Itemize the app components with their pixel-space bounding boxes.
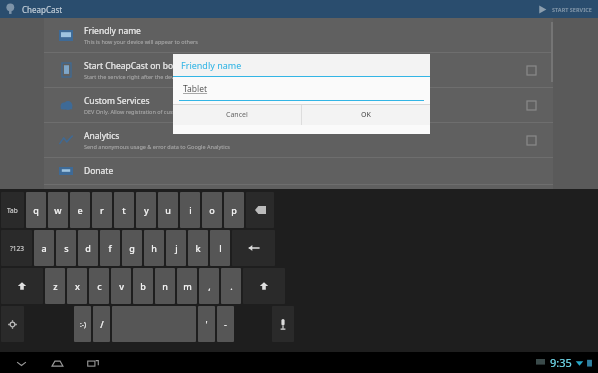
staticText: g — [129, 242, 135, 254]
button[interactable]: p — [224, 192, 244, 228]
staticText: Start the service right after the device… — [84, 73, 198, 80]
staticText: h — [151, 242, 157, 254]
staticText: r — [100, 204, 104, 216]
button[interactable]: Cancel — [173, 105, 301, 125]
button[interactable]: k — [188, 230, 208, 266]
button[interactable]: Shift — [243, 268, 285, 304]
button[interactable]: z — [45, 268, 65, 304]
button[interactable]: Start CheapCast on boot checkbox — [521, 60, 541, 80]
button[interactable]: q — [26, 192, 46, 228]
staticText: o — [209, 204, 215, 216]
button[interactable]: m — [177, 268, 197, 304]
button[interactable]: g — [122, 230, 142, 266]
staticText: z — [53, 280, 58, 292]
staticText: y — [144, 204, 149, 216]
button[interactable]: Hide keyboard — [8, 354, 34, 372]
staticText: u — [165, 204, 171, 216]
button[interactable]: . — [221, 268, 241, 304]
staticText: ' — [205, 318, 208, 330]
button[interactable]: Home — [44, 354, 70, 372]
staticText: p — [231, 204, 237, 216]
staticText: OK — [361, 110, 371, 120]
staticText: ?123 — [10, 244, 24, 253]
button[interactable]: l — [210, 230, 230, 266]
button[interactable]: t — [114, 192, 134, 228]
staticText: Analytics — [84, 130, 120, 142]
staticText: :-) — [80, 320, 86, 329]
button[interactable]: i — [180, 192, 200, 228]
staticText: 9:35 — [550, 355, 572, 370]
staticText: CheapCast — [22, 4, 63, 15]
staticText: w — [54, 204, 62, 216]
staticText: / — [100, 318, 104, 330]
button[interactable]: ' — [198, 306, 215, 342]
button[interactable]: x — [67, 268, 87, 304]
button[interactable]: / — [93, 306, 110, 342]
button[interactable]: Custom Services checkbox — [521, 95, 541, 115]
button[interactable]: d — [78, 230, 98, 266]
button[interactable]: o — [202, 192, 222, 228]
button[interactable]: Start CheapCast on boot — [44, 53, 553, 88]
staticText: c — [97, 280, 102, 292]
button[interactable]: c — [89, 268, 109, 304]
staticText: This is how your device will appear to o… — [84, 38, 199, 45]
button[interactable]: n — [155, 268, 175, 304]
button[interactable]: Shift — [1, 268, 43, 304]
staticText: e — [77, 204, 83, 216]
button[interactable]: u — [158, 192, 178, 228]
button[interactable]: r — [92, 192, 112, 228]
button[interactable]: y — [136, 192, 156, 228]
button[interactable]: Enter — [232, 230, 275, 266]
button[interactable]: w — [48, 192, 68, 228]
button[interactable]: :-) — [74, 306, 91, 342]
staticText: v — [119, 280, 124, 292]
staticText: n — [162, 280, 168, 292]
button[interactable]: Voice input — [272, 306, 294, 342]
staticText: DEV Only. Allow registration of custom s… — [84, 108, 206, 115]
staticText: - — [224, 318, 227, 330]
staticText: s — [64, 242, 69, 254]
staticText: k — [195, 242, 201, 254]
staticText: Send anonymous usage & error data to Goo… — [84, 143, 230, 150]
button[interactable]: v — [111, 268, 131, 304]
button[interactable]: a — [34, 230, 54, 266]
staticText: d — [85, 242, 91, 254]
staticText: x — [75, 280, 80, 292]
button[interactable]: e — [70, 192, 90, 228]
button[interactable]: Friendly name — [44, 18, 553, 53]
staticText: Tab — [7, 206, 18, 215]
staticText: m — [183, 280, 192, 292]
staticText: j — [175, 242, 178, 254]
button[interactable]: Backspace — [246, 192, 274, 228]
staticText: . — [230, 280, 233, 292]
button[interactable]: , — [199, 268, 219, 304]
button[interactable]: b — [133, 268, 153, 304]
button[interactable]: ?123 — [1, 230, 32, 266]
staticText: Start CheapCast on boot — [84, 60, 182, 72]
staticText: q — [33, 204, 39, 216]
button[interactable]: - — [217, 306, 234, 342]
staticText: Friendly name — [181, 59, 242, 71]
button[interactable]: OK — [302, 105, 430, 125]
staticText: Custom Services — [84, 95, 150, 107]
staticText: , — [208, 280, 211, 292]
button[interactable]: h — [144, 230, 164, 266]
staticText: a — [41, 242, 47, 254]
staticText: Donate — [84, 165, 114, 177]
staticText: l — [219, 242, 222, 254]
button[interactable]: Keyboard settings — [1, 306, 24, 342]
button[interactable]: START SERVICE — [530, 3, 598, 16]
button[interactable]: Donate — [44, 158, 553, 185]
staticText: Friendly name — [84, 25, 141, 37]
button[interactable]: s — [56, 230, 76, 266]
staticText: t — [122, 204, 126, 216]
button[interactable]: Analytics — [44, 123, 553, 158]
button[interactable]: Custom Services — [44, 88, 553, 123]
button[interactable]: Analytics checkbox — [521, 130, 541, 150]
button[interactable]: Recent apps — [80, 354, 106, 372]
button[interactable]: j — [166, 230, 186, 266]
button[interactable]: f — [100, 230, 120, 266]
button[interactable]: Tab — [1, 192, 24, 228]
staticText: Cancel — [226, 110, 248, 120]
